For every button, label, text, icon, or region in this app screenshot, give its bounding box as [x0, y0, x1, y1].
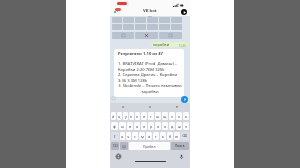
button[interactable]: е [135, 112, 140, 120]
staticText: я [122, 104, 124, 109]
staticText: м [141, 134, 144, 139]
button[interactable]: Shift [111, 132, 119, 140]
button[interactable]: ю [174, 132, 180, 140]
button[interactable]: ч [126, 132, 131, 140]
button[interactable]: д [169, 122, 175, 130]
button[interactable]: а [136, 103, 163, 110]
button[interactable]: щ [162, 112, 168, 120]
staticText: г [150, 114, 152, 119]
staticText: ш [156, 114, 160, 119]
button[interactable]: ц [117, 112, 122, 120]
staticText: х [178, 114, 180, 119]
button[interactable]: г [148, 112, 154, 120]
button[interactable]: й [111, 112, 116, 120]
button[interactable]: м [139, 132, 145, 140]
button[interactable]: ф [111, 122, 118, 130]
button[interactable] [117, 2, 127, 5]
staticText: 3. Skobinski – Печать немножко коробки [118, 83, 182, 94]
staticText: и [148, 134, 151, 139]
staticText: у [125, 114, 127, 119]
staticText: в [176, 104, 178, 109]
button[interactable]: ъ [183, 112, 189, 120]
button[interactable]: о [155, 122, 161, 130]
staticText: а [136, 124, 139, 129]
button[interactable]: Option [112, 32, 134, 39]
button[interactable]: ь [160, 132, 166, 140]
staticText: ч [127, 134, 130, 139]
button[interactable] [115, 8, 121, 11]
button[interactable]: Поиск [171, 142, 189, 150]
button[interactable]: Option [159, 32, 182, 39]
staticText: о [157, 124, 160, 129]
button[interactable]: Voice input [179, 154, 184, 159]
button[interactable]: ы [119, 122, 126, 130]
staticText: 123 [113, 144, 118, 148]
button[interactable]: Attach [112, 97, 115, 100]
button[interactable]: т [153, 132, 159, 140]
staticText: 1. BRATVIRAT (Prod. Дямиш) – Коробки 2:2… [118, 61, 182, 72]
button[interactable]: л [162, 122, 168, 130]
button[interactable]: а [134, 122, 140, 130]
staticText: bot [148, 14, 152, 17]
button[interactable]: Change language [116, 154, 121, 159]
button[interactable]: я [110, 103, 136, 110]
button[interactable]: Backspace [181, 132, 189, 140]
staticText: с [134, 134, 136, 139]
button[interactable]: к [129, 112, 134, 120]
staticText: э [185, 124, 187, 129]
button[interactable]: з [169, 112, 175, 120]
button[interactable]: я [120, 132, 125, 140]
staticText: VK bot [143, 8, 157, 14]
staticText: в [129, 124, 132, 129]
button[interactable]: с [132, 132, 138, 140]
button[interactable]: Результаты 1-10 из 47 [114, 49, 184, 97]
staticText: к [130, 114, 133, 119]
staticText: д [171, 124, 174, 129]
button[interactable]: и [146, 132, 152, 140]
button[interactable]: у [123, 112, 128, 120]
button[interactable]: Emoji [120, 142, 128, 150]
staticText: я [121, 134, 124, 139]
staticText: Результаты 1-10 из 47 [118, 51, 163, 57]
staticText: ж [178, 124, 181, 129]
staticText: 2. Скрипка Драгич – Коробки 3:36 3.3M 12… [118, 72, 182, 83]
button[interactable]: б [167, 132, 173, 140]
button[interactable]: в [127, 122, 133, 130]
staticText: щ [163, 114, 167, 119]
staticText: 12:40 [179, 44, 186, 47]
button[interactable]: ш [155, 112, 161, 120]
button[interactable]: Play [181, 9, 187, 15]
staticText: л [164, 124, 167, 129]
button[interactable]: п [141, 122, 147, 130]
staticText: ю [175, 134, 179, 139]
button[interactable]: р [148, 122, 154, 130]
button[interactable]: ж [176, 122, 182, 130]
staticText: коробки [153, 42, 170, 47]
staticText: ☺ [122, 144, 127, 149]
button[interactable]: Пробел [129, 142, 170, 150]
button[interactable]: в [163, 103, 190, 110]
button[interactable]: 123 [111, 142, 119, 150]
button[interactable]: х [176, 112, 182, 120]
staticText: е [136, 114, 139, 119]
button[interactable]: Close [135, 32, 158, 39]
staticText: й [112, 114, 115, 119]
button[interactable]: коробки [151, 42, 188, 47]
staticText: р [150, 124, 153, 129]
button[interactable]: э [183, 122, 189, 130]
button[interactable]: Send [181, 96, 188, 103]
staticText: а [149, 104, 151, 109]
button[interactable]: н [141, 112, 147, 120]
